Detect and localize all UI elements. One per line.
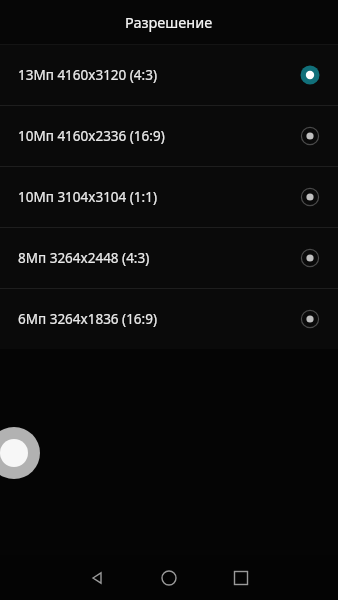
staticText: 6Мп 3264x1836 (16:9): [18, 310, 157, 328]
button[interactable]: 10Мп 4160x2336 (16:9): [0, 106, 338, 166]
button[interactable]: 10Мп 3104x3104 (1:1): [0, 167, 338, 227]
staticText: 13Мп 4160x3120 (4:3): [18, 66, 157, 84]
staticText: 8Мп 3264x2448 (4:3): [18, 249, 150, 267]
staticText: Разрешение: [125, 12, 213, 32]
button[interactable]: Home: [145, 555, 193, 600]
other: Shutter: [0, 0, 338, 600]
staticText: 10Мп 3104x3104 (1:1): [18, 188, 157, 206]
button[interactable]: Back: [73, 555, 121, 600]
button[interactable]: 13Мп 4160x3120 (4:3): [0, 45, 338, 105]
button[interactable]: Recent apps: [217, 555, 265, 600]
button[interactable]: 8Мп 3264x2448 (4:3): [0, 228, 338, 288]
staticText: 10Мп 4160x2336 (16:9): [18, 127, 165, 145]
button[interactable]: 6Мп 3264x1836 (16:9): [0, 289, 338, 349]
